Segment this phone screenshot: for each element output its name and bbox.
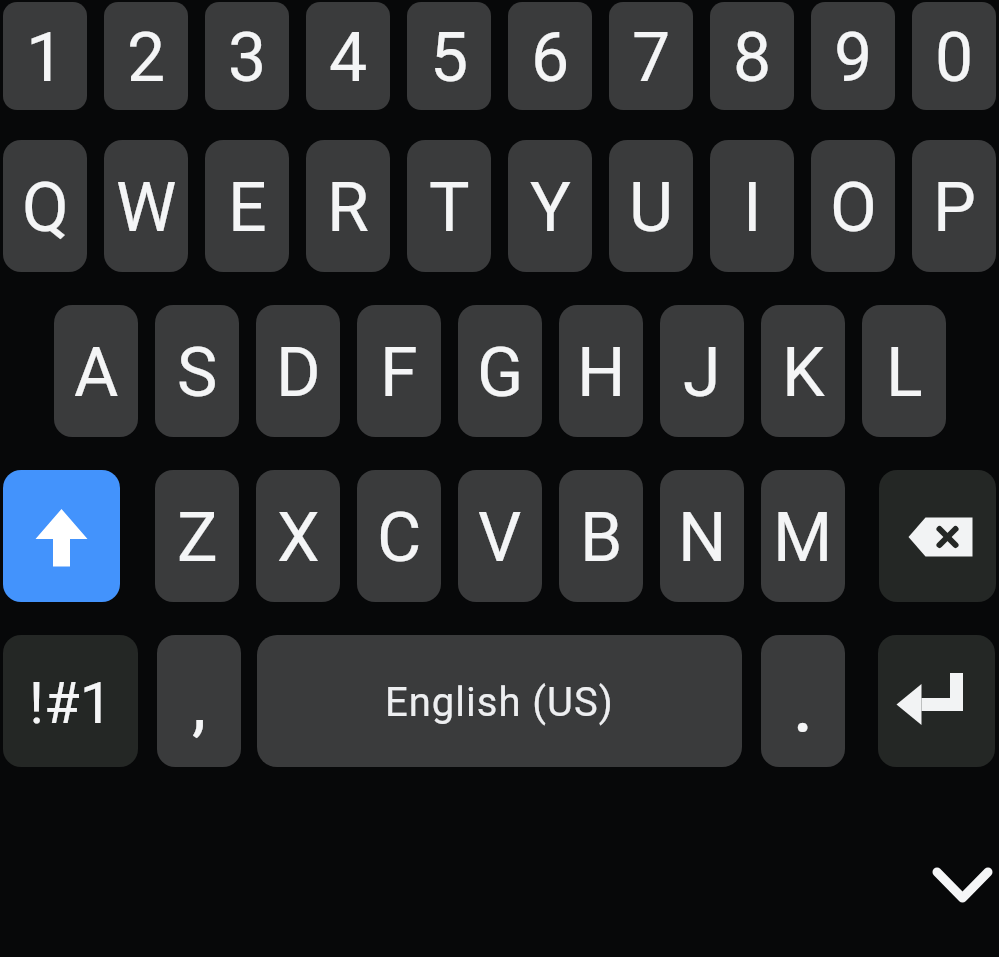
staticText: T: [429, 168, 470, 248]
button[interactable]: .: [761, 635, 845, 767]
staticText: 1: [26, 18, 65, 98]
button[interactable]: [879, 470, 996, 602]
button[interactable]: Q: [3, 140, 87, 272]
button[interactable]: N: [660, 470, 744, 602]
staticText: N: [678, 498, 727, 578]
staticText: V: [478, 498, 522, 578]
button[interactable]: O: [811, 140, 895, 272]
button[interactable]: 6: [508, 2, 592, 110]
staticText: !#1: [29, 669, 113, 737]
button[interactable]: 1: [3, 2, 87, 110]
button[interactable]: X: [256, 470, 340, 602]
button[interactable]: E: [205, 140, 289, 272]
button[interactable]: F: [357, 305, 441, 437]
staticText: O: [830, 168, 877, 248]
button[interactable]: Y: [508, 140, 592, 272]
staticText: S: [177, 333, 218, 413]
button[interactable]: C: [357, 470, 441, 602]
button[interactable]: L: [862, 305, 946, 437]
staticText: 8: [733, 18, 772, 98]
button[interactable]: P: [912, 140, 996, 272]
staticText: Z: [177, 498, 218, 578]
staticText: C: [377, 498, 422, 578]
button[interactable]: 9: [811, 2, 895, 110]
button[interactable]: K: [761, 305, 845, 437]
button[interactable]: J: [660, 305, 744, 437]
button[interactable]: [878, 635, 995, 767]
button[interactable]: !#1: [3, 635, 138, 767]
button[interactable]: T: [407, 140, 491, 272]
button[interactable]: R: [306, 140, 390, 272]
button[interactable]: Z: [155, 470, 239, 602]
staticText: L: [886, 333, 923, 413]
button[interactable]: G: [458, 305, 542, 437]
button[interactable]: U: [609, 140, 693, 272]
staticText: A: [74, 333, 119, 413]
button[interactable]: 7: [609, 2, 693, 110]
button[interactable]: M: [761, 470, 845, 602]
staticText: U: [629, 168, 674, 248]
button[interactable]: 2: [104, 2, 188, 110]
button[interactable]: B: [559, 470, 643, 602]
staticText: ,: [192, 661, 207, 745]
staticText: Q: [22, 168, 69, 248]
staticText: D: [276, 333, 321, 413]
staticText: F: [380, 333, 418, 413]
staticText: Y: [530, 168, 571, 248]
staticText: I: [743, 168, 762, 248]
staticText: P: [933, 168, 976, 248]
button[interactable]: [3, 470, 120, 602]
staticText: J: [683, 333, 721, 413]
button[interactable]: 5: [407, 2, 491, 110]
staticText: X: [277, 498, 320, 578]
staticText: B: [580, 498, 623, 578]
button[interactable]: 0: [912, 2, 996, 110]
staticText: R: [327, 168, 369, 248]
button[interactable]: 8: [710, 2, 794, 110]
button[interactable]: A: [54, 305, 138, 437]
button[interactable]: 4: [306, 2, 390, 110]
staticText: H: [577, 333, 626, 413]
staticText: W: [116, 168, 177, 248]
staticText: 9: [834, 18, 873, 98]
button[interactable]: I: [710, 140, 794, 272]
staticText: 6: [531, 18, 570, 98]
button[interactable]: S: [155, 305, 239, 437]
button[interactable]: W: [104, 140, 188, 272]
button[interactable]: H: [559, 305, 643, 437]
staticText: 7: [632, 18, 671, 98]
button[interactable]: D: [256, 305, 340, 437]
staticText: 4: [329, 18, 368, 98]
staticText: 0: [935, 18, 974, 98]
staticText: M: [773, 498, 833, 578]
button[interactable]: English (US): [257, 635, 742, 767]
staticText: 3: [228, 18, 267, 98]
button[interactable]: V: [458, 470, 542, 602]
staticText: E: [228, 168, 267, 248]
staticText: 5: [430, 18, 469, 98]
button[interactable]: [925, 860, 999, 916]
staticText: English (US): [385, 679, 614, 726]
button[interactable]: ,: [157, 635, 241, 767]
staticText: K: [782, 333, 825, 413]
staticText: 2: [127, 18, 166, 98]
button[interactable]: 3: [205, 2, 289, 110]
staticText: G: [477, 333, 524, 413]
staticText: .: [792, 654, 815, 752]
